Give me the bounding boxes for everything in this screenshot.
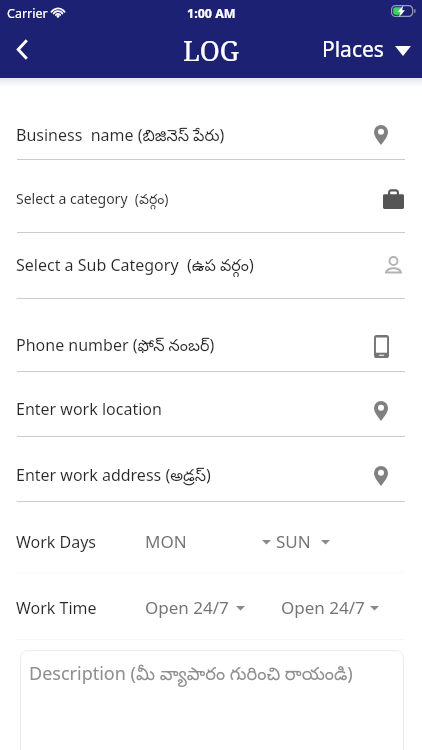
staticText: Select a category (వర్గం) bbox=[16, 189, 169, 211]
staticText: Work Days bbox=[16, 531, 97, 553]
button[interactable]: SUN bbox=[276, 522, 334, 562]
staticText: Work Time bbox=[16, 597, 97, 619]
staticText: Enter work location bbox=[16, 398, 162, 420]
button[interactable]: Back bbox=[0, 27, 44, 71]
staticText: Select a Sub Category (ఉప వర్గం) bbox=[16, 254, 254, 279]
staticText: SUN bbox=[276, 530, 311, 553]
staticText: Places bbox=[322, 35, 384, 64]
staticText: MON bbox=[145, 530, 187, 553]
staticText: Carrier bbox=[7, 5, 48, 22]
button[interactable]: Places bbox=[316, 29, 417, 70]
button[interactable]: Business name (బిజినెస్ పేరు) bbox=[0, 86, 422, 159]
button[interactable]: Phone number (ఫోన్ నంబర్) bbox=[0, 298, 422, 371]
staticText: Business name (బిజినెస్ పేరు) bbox=[16, 124, 225, 149]
staticText: LOG bbox=[183, 32, 240, 69]
staticText: Open 24/7 bbox=[145, 596, 229, 619]
button[interactable]: MON bbox=[145, 522, 275, 562]
button[interactable]: Select a category (వర్గం) bbox=[0, 159, 422, 232]
button[interactable]: Enter work location bbox=[0, 371, 422, 436]
button[interactable]: Open 24/7 bbox=[281, 588, 383, 628]
button[interactable]: Open 24/7 bbox=[145, 588, 249, 628]
staticText: 1:00 AM bbox=[187, 5, 236, 22]
button[interactable]: Select a Sub Category (ఉప వర్గం) bbox=[0, 232, 422, 298]
staticText: Enter work address (అడ్రస్) bbox=[16, 464, 211, 489]
staticText: Open 24/7 bbox=[281, 596, 365, 619]
button[interactable]: Description (మీ వ్యాపారం గురించి రాయండి) bbox=[20, 650, 404, 750]
staticText: Description (మీ వ్యాపారం గురించి రాయండి) bbox=[29, 661, 353, 689]
staticText: Phone number (ఫోన్ నంబర్) bbox=[16, 334, 215, 359]
button[interactable]: Enter work address (అడ్రస్) bbox=[0, 436, 422, 501]
